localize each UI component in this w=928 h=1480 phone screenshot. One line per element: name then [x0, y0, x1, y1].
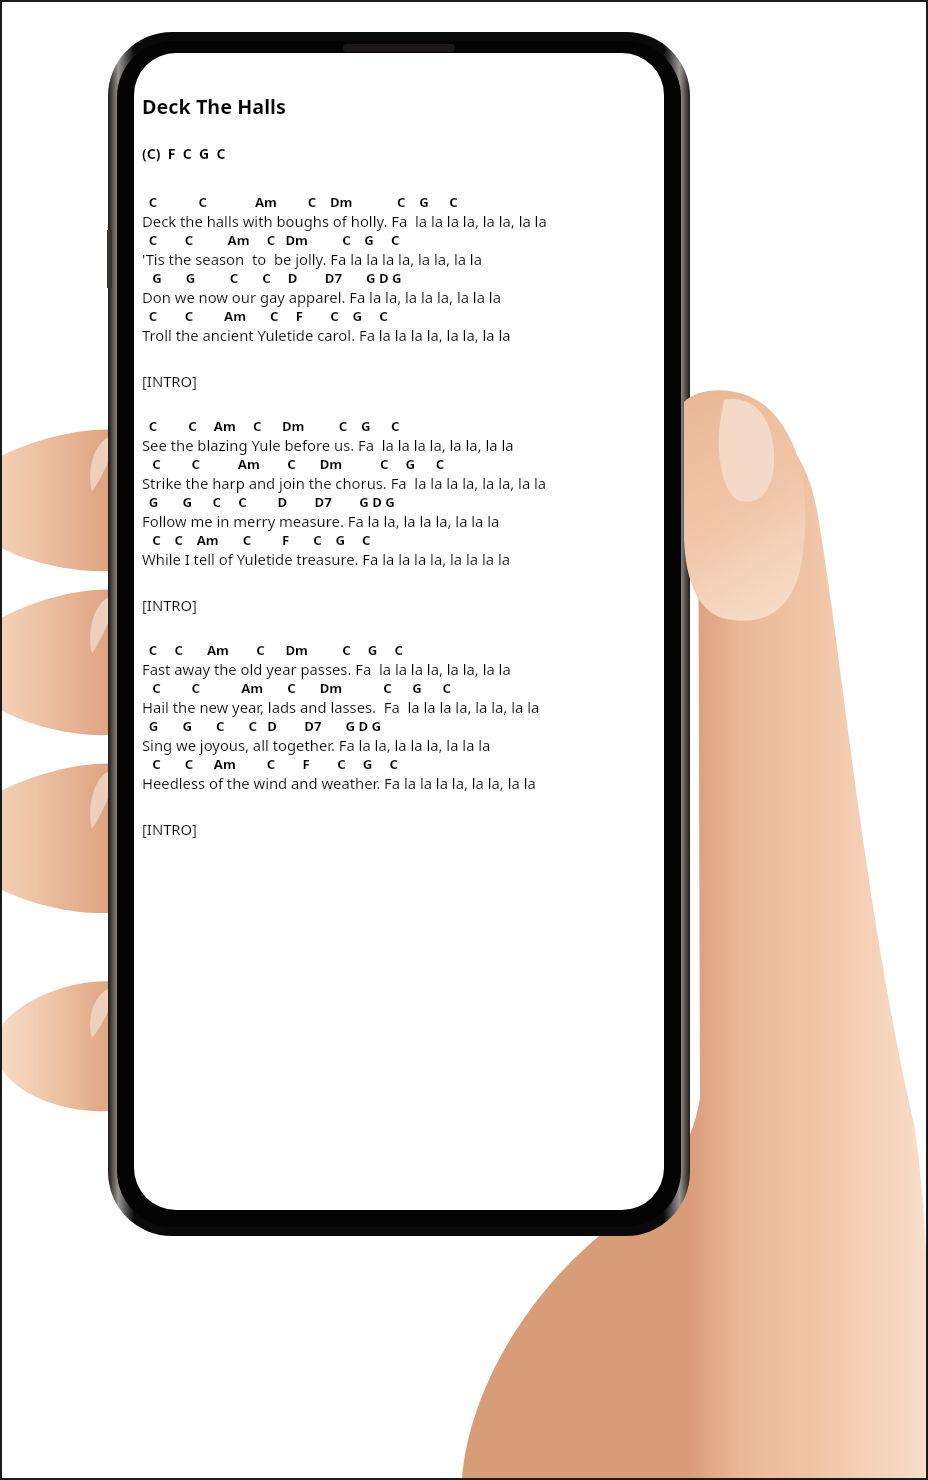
staticText: Strike the harp and join the chorus. Fa …: [142, 473, 547, 493]
staticText: See the blazing Yule before us. Fa la la…: [142, 435, 514, 455]
staticText: Heedless of the wind and weather. Fa la …: [142, 773, 536, 793]
staticText: Troll the ancient Yuletide carol. Fa la …: [142, 325, 511, 345]
staticText: C C Am C Dm C G C: [142, 641, 403, 659]
staticText: C C Am C Dm C G C: [142, 417, 400, 435]
staticText: [INTRO]: [142, 595, 197, 615]
staticText: Don we now our gay apparel. Fa la la, la…: [142, 287, 501, 307]
staticText: C C Am C F C G C: [142, 755, 398, 773]
button[interactable]: Deck The Halls: [134, 53, 664, 1210]
staticText: C C Am C F C G C: [142, 531, 371, 549]
staticText: C C Am C F C G C: [142, 307, 388, 325]
staticText: G G C C D D7 G D G: [142, 493, 395, 511]
staticText: Deck The Halls: [142, 93, 286, 120]
staticText: Sing we joyous, all together. Fa la la, …: [142, 735, 491, 755]
staticText: C C Am C Dm C G C: [142, 455, 445, 473]
staticText: Deck the halls with boughs of holly. Fa …: [142, 211, 547, 231]
staticText: 'Tis the season to be jolly. Fa la la la…: [142, 249, 482, 269]
staticText: (C) F C G C: [142, 144, 226, 163]
staticText: [INTRO]: [142, 819, 197, 839]
staticText: [INTRO]: [142, 371, 197, 391]
staticText: Fast away the old year passes. Fa la la …: [142, 659, 511, 679]
staticText: G G C C D D7 G D G: [142, 269, 402, 287]
staticText: C C Am C Dm C G C: [142, 193, 458, 211]
staticText: C C Am C Dm C G C: [142, 679, 451, 697]
staticText: Hail the new year, lads and lasses. Fa l…: [142, 697, 540, 717]
staticText: C C Am C Dm C G C: [142, 231, 400, 249]
staticText: G G C C D D7 G D G: [142, 717, 382, 735]
staticText: While I tell of Yuletide treasure. Fa la…: [142, 549, 511, 569]
staticText: Follow me in merry measure. Fa la la, la…: [142, 511, 500, 531]
